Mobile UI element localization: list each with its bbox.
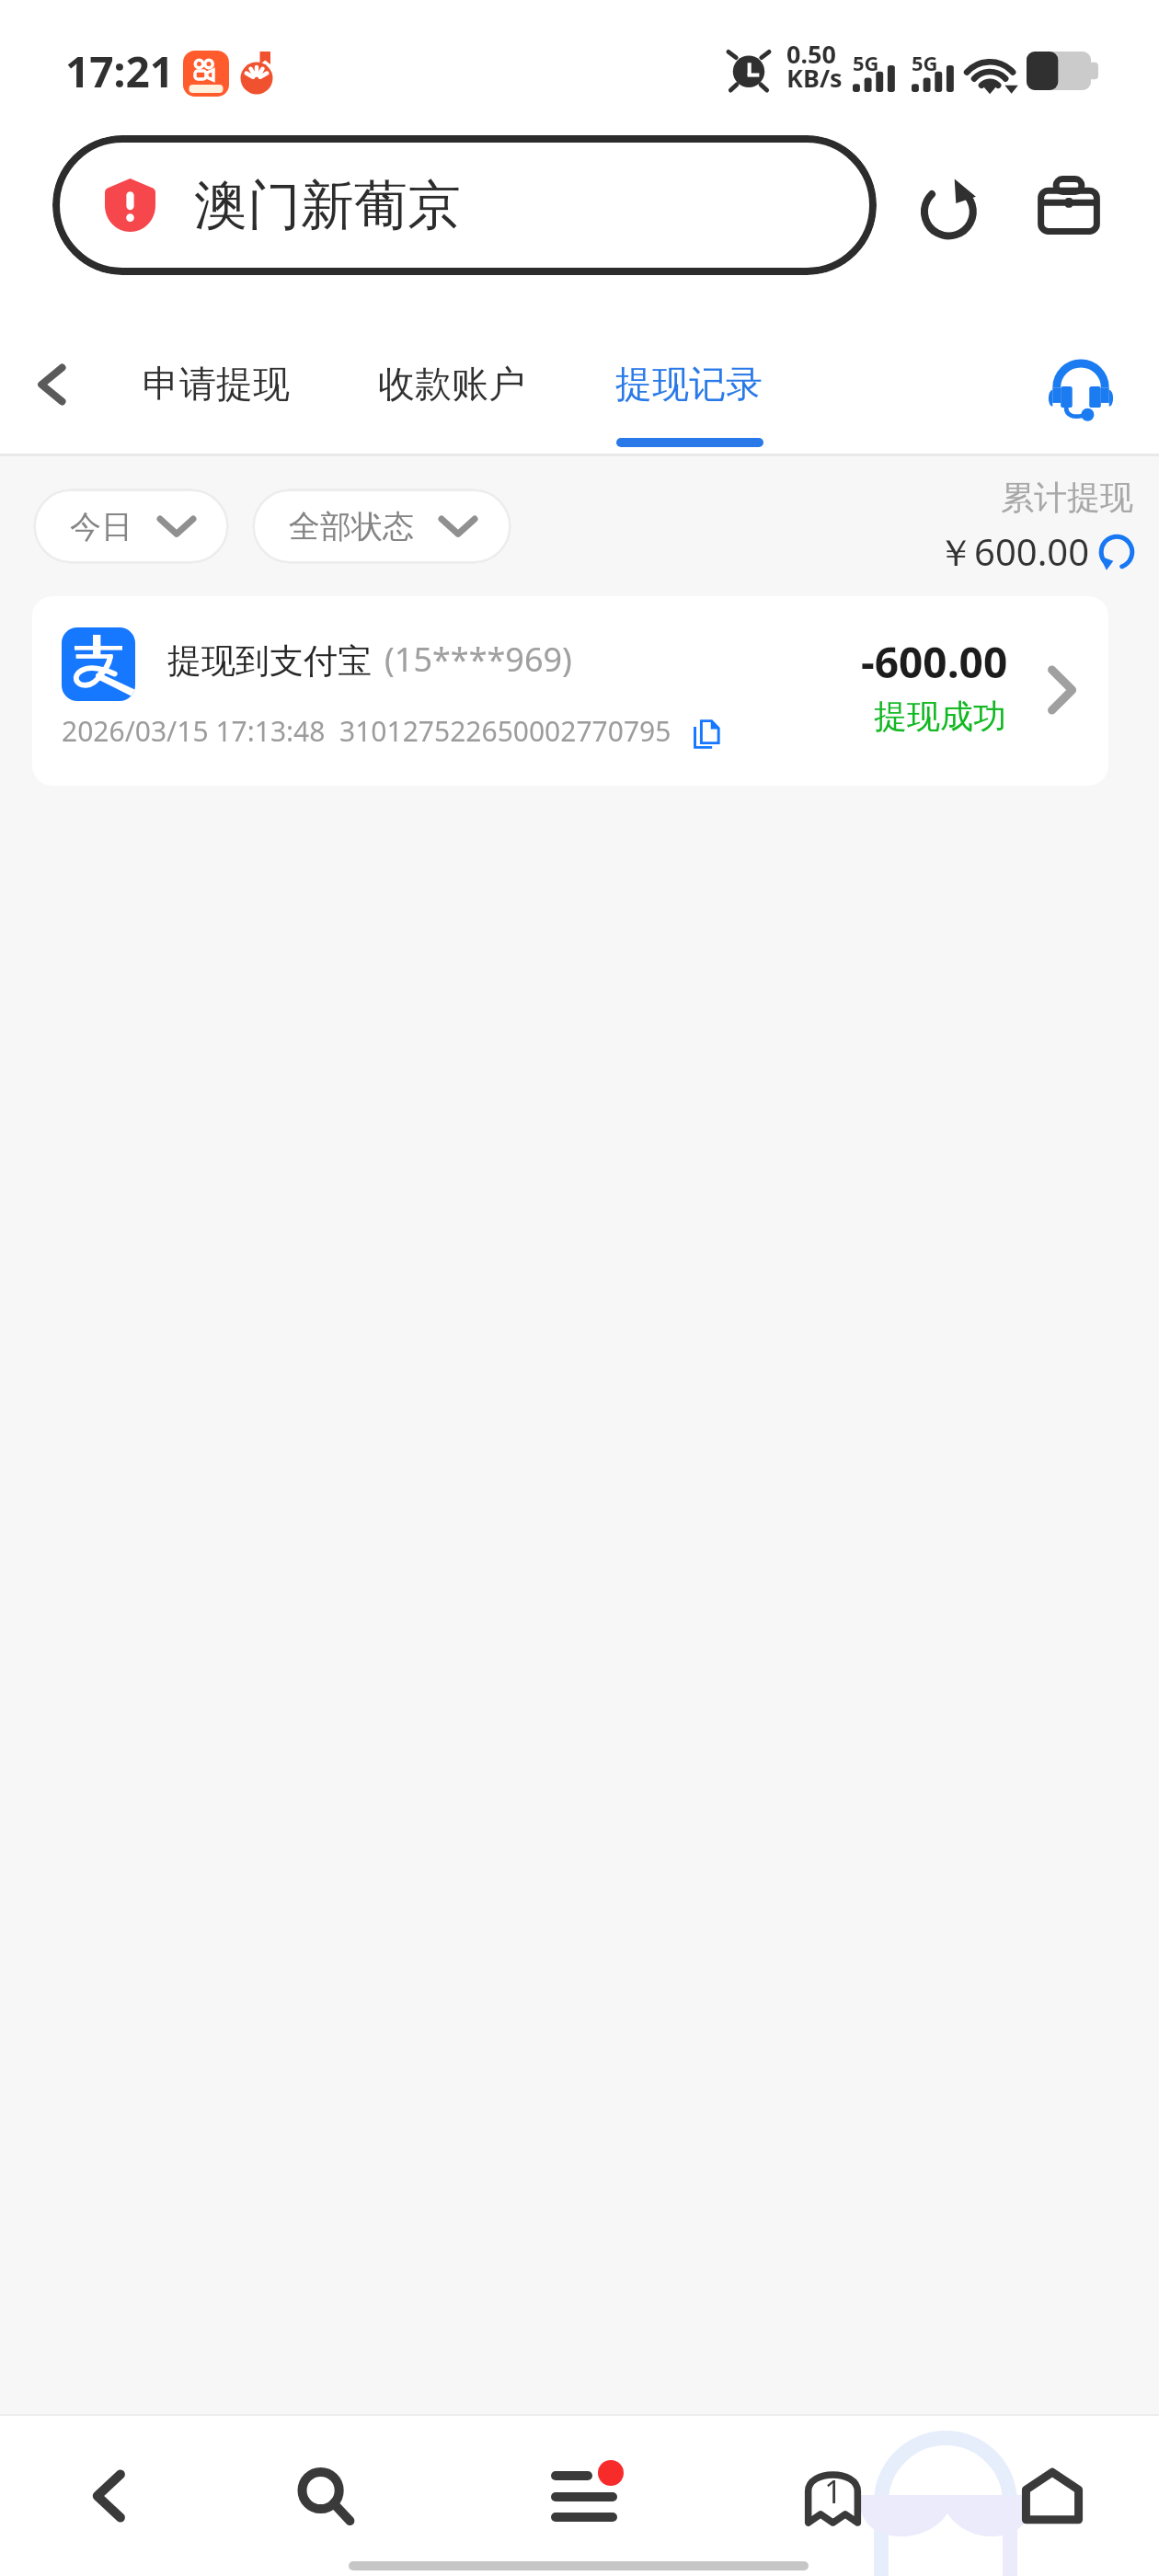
staticText: 17:21 — [65, 42, 175, 100]
staticText: 5G — [853, 49, 879, 76]
button[interactable]: Menu — [508, 2416, 664, 2574]
staticText: 今日 — [70, 507, 132, 546]
button[interactable]: 申请提现 — [143, 350, 290, 418]
staticText: 提现记录 — [615, 361, 763, 407]
button[interactable]: 提现记录 — [615, 350, 763, 418]
staticText: 1 — [824, 2470, 843, 2513]
button[interactable]: Customer service — [1027, 332, 1133, 439]
staticText: 提现到支付宝 — [167, 639, 372, 683]
button[interactable]: Home — [974, 2416, 1130, 2574]
button[interactable]: Back — [30, 2416, 187, 2574]
button[interactable]: 今日 — [33, 489, 229, 564]
staticText: 5G — [912, 49, 938, 76]
button[interactable]: 提现到支付宝 — [32, 596, 1108, 786]
button[interactable]: Tabs — [754, 2416, 911, 2574]
button[interactable]: Toolbox — [1025, 161, 1113, 249]
button[interactable]: Copy — [694, 719, 719, 749]
button[interactable]: 全部状态 — [252, 489, 511, 564]
button[interactable]: Refresh total — [1089, 524, 1144, 580]
staticText: KB/s — [786, 61, 843, 95]
staticText: ￥600.00 — [937, 526, 1090, 577]
staticText: 收款账户 — [378, 361, 525, 407]
button[interactable]: 澳门新葡京 — [52, 135, 877, 275]
staticText: 累计提现 — [1001, 477, 1133, 518]
staticText: 提现成功 — [874, 696, 1006, 737]
button[interactable]: 收款账户 — [378, 350, 525, 418]
staticText: 申请提现 — [143, 361, 290, 407]
staticText: 澳门新葡京 — [194, 172, 461, 239]
staticText: 全部状态 — [289, 507, 414, 546]
button[interactable]: Search — [247, 2416, 404, 2574]
button[interactable]: Refresh — [907, 161, 995, 249]
staticText: 2026/03/15 17:13:48 31012752265000277079… — [62, 712, 671, 750]
staticText: (15****969) — [384, 637, 572, 682]
staticText: -600.00 — [861, 633, 1008, 691]
staticText: 0.50 — [786, 37, 836, 71]
button[interactable]: Back — [7, 340, 96, 429]
